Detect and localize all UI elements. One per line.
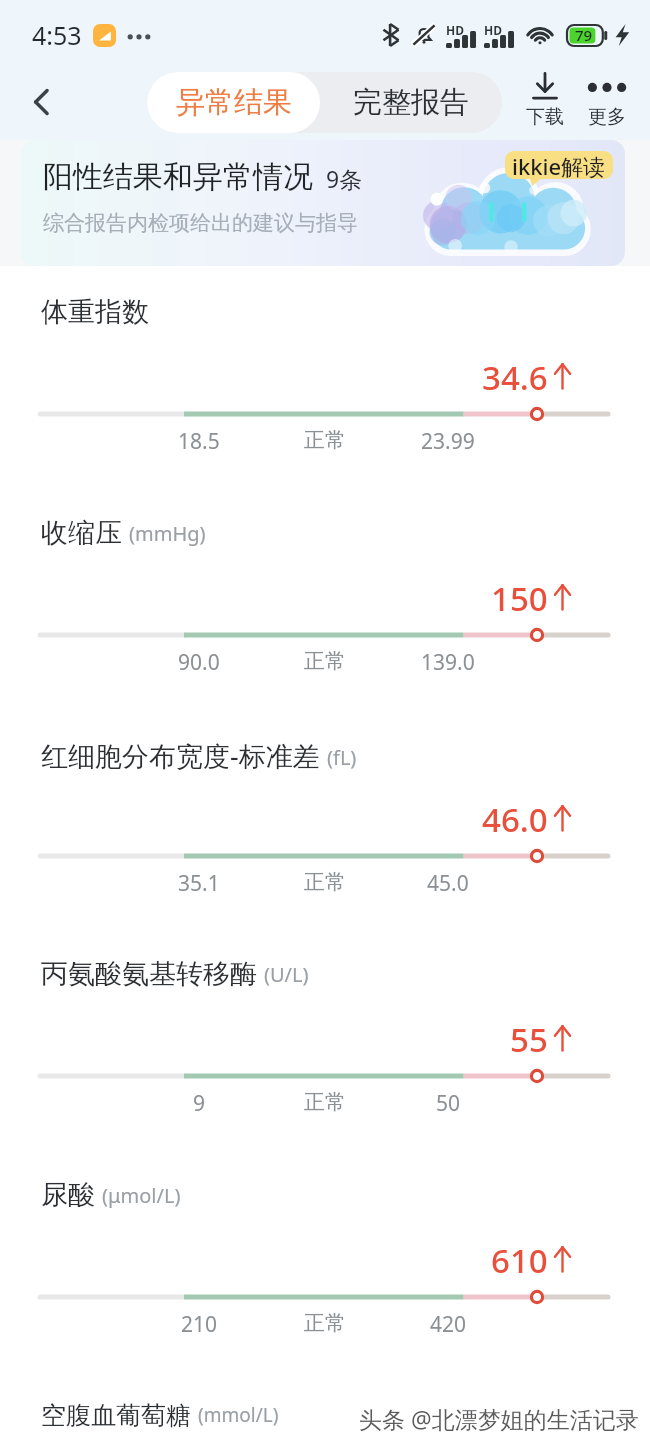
staticText: 体重指数 — [41, 295, 149, 329]
staticText: 50 — [436, 1089, 461, 1118]
button[interactable]: 空腹血葡萄糖 — [41, 1400, 279, 1431]
staticText: HD — [446, 22, 464, 38]
button[interactable]: 尿酸 — [0, 1167, 650, 1367]
staticText: 尿酸 — [41, 1178, 95, 1212]
staticText: 420 — [430, 1310, 467, 1339]
staticText: 55 — [510, 1017, 548, 1062]
staticText: 完整报告 — [353, 84, 469, 121]
staticText: 正常 — [304, 869, 346, 895]
staticText: 45.0 — [427, 869, 469, 898]
staticText: 610 — [491, 1238, 548, 1283]
staticText: 更多 — [588, 105, 626, 129]
staticText: 丙氨酸氨基转移酶 — [41, 957, 257, 991]
staticText: (mmol/L) — [198, 1402, 279, 1428]
staticText: 46.0 — [482, 797, 548, 842]
staticText: (U/L) — [264, 961, 309, 988]
staticText: 35.1 — [178, 869, 220, 898]
staticText: 9条 — [326, 163, 363, 194]
staticText: 79 — [575, 25, 593, 45]
button[interactable]: 丙氨酸氨基转移酶 — [0, 946, 650, 1146]
button[interactable]: 异常结果 — [147, 72, 320, 133]
staticText: 下载 — [526, 105, 564, 129]
staticText: ikkie解读 — [512, 151, 606, 179]
button[interactable]: 阳性结果和异常情况 — [21, 140, 625, 266]
staticText: (fL) — [327, 744, 357, 771]
staticText: 异常结果 — [176, 84, 292, 121]
staticText: 正常 — [304, 1089, 346, 1115]
staticText: 139.0 — [421, 648, 475, 677]
button[interactable]: 更多 — [577, 68, 637, 129]
staticText: (μmol/L) — [102, 1182, 181, 1209]
staticText: 18.5 — [178, 427, 220, 456]
staticText: 红细胞分布宽度-标准差 — [41, 737, 320, 774]
staticText: 150 — [491, 576, 548, 621]
staticText: 空腹血葡萄糖 — [41, 1400, 191, 1431]
staticText: 头条 @北漂梦姐的生活记录 — [359, 1403, 639, 1434]
staticText: HD — [484, 22, 502, 38]
staticText: 正常 — [304, 1310, 346, 1336]
staticText: 正常 — [304, 648, 346, 674]
staticText: 正常 — [304, 427, 346, 453]
staticText: 23.99 — [421, 427, 475, 456]
staticText: 阳性结果和异常情况 — [43, 158, 313, 196]
staticText: (mmHg) — [129, 520, 206, 547]
staticText: 34.6 — [482, 355, 548, 400]
staticText: 210 — [181, 1310, 218, 1339]
staticText: 90.0 — [178, 648, 220, 677]
button[interactable]: 红细胞分布宽度-标准差 — [0, 726, 650, 926]
button[interactable]: 下载 — [515, 68, 575, 129]
button[interactable]: 收缩压 — [0, 505, 650, 705]
button[interactable]: 体重指数 — [0, 284, 650, 484]
staticText: 9 — [193, 1089, 206, 1118]
button[interactable]: 完整报告 — [320, 72, 502, 133]
staticText: 4:53 — [32, 18, 82, 52]
staticText: 收缩压 — [41, 516, 122, 550]
button[interactable]: Back — [16, 76, 68, 128]
staticText: 综合报告内检项给出的建议与指导 — [43, 210, 358, 236]
